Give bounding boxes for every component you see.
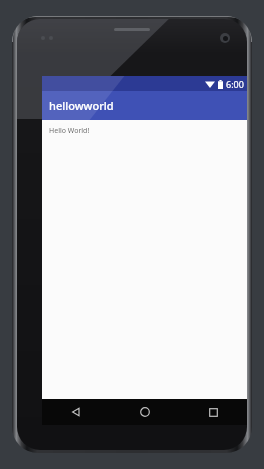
button[interactable]: Home <box>110 399 179 425</box>
staticText: Hello World! <box>49 126 90 136</box>
staticText: hellowworld <box>49 98 114 113</box>
staticText: 6:00 <box>226 78 244 90</box>
button[interactable]: Back <box>42 399 110 425</box>
button[interactable]: Recent apps <box>179 399 247 425</box>
button[interactable]: hellowworld <box>42 91 247 120</box>
